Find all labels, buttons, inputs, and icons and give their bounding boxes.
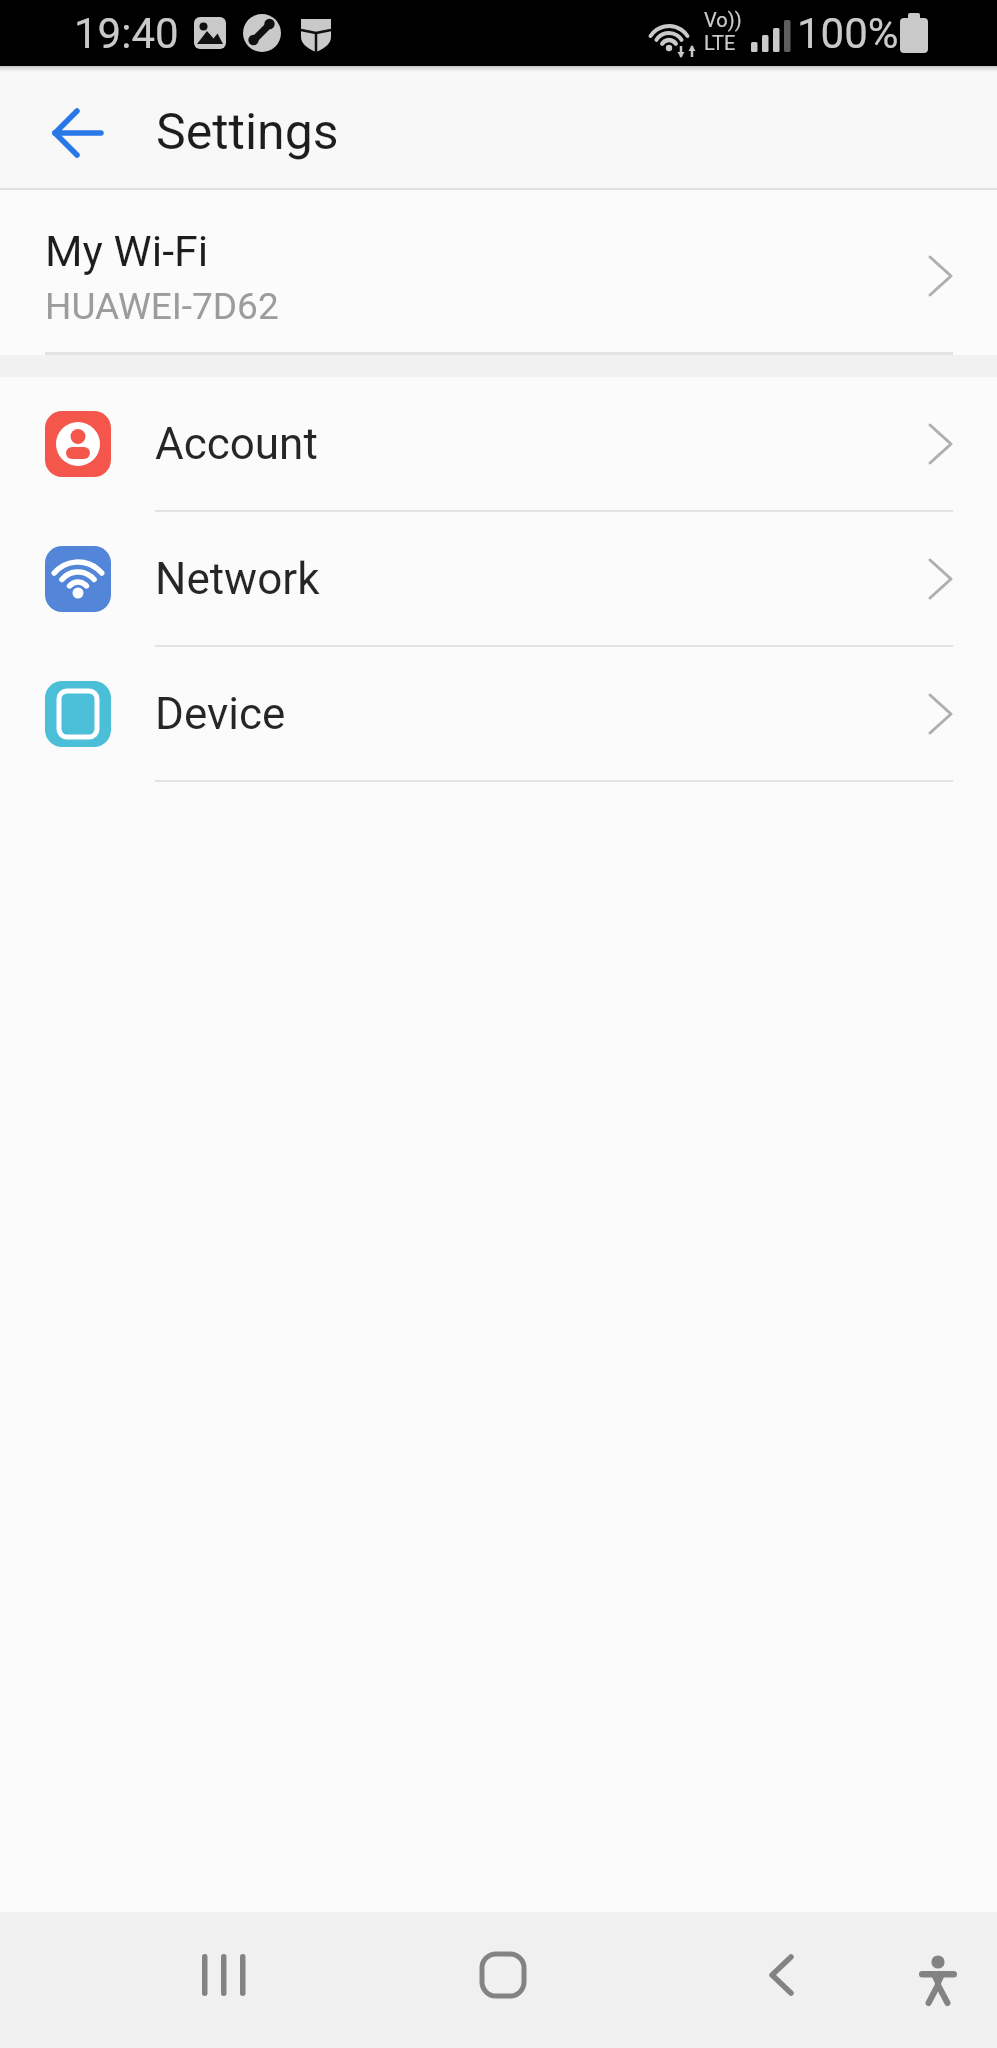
staticText: Device — [155, 688, 286, 740]
button[interactable] — [743, 1937, 819, 2013]
staticText: LTE — [704, 31, 736, 54]
button[interactable]: Device — [0, 647, 997, 780]
staticText: Network — [155, 553, 320, 605]
staticText: Vo)) — [704, 8, 742, 31]
button[interactable] — [38, 93, 118, 173]
button[interactable]: My Wi-Fi — [0, 190, 997, 352]
button[interactable]: Network — [0, 512, 997, 645]
staticText: Account — [155, 418, 318, 470]
staticText: 100% — [797, 9, 899, 58]
button[interactable] — [186, 1937, 262, 2013]
staticText: HUAWEI-7D62 — [45, 285, 279, 328]
staticText: My Wi-Fi — [45, 226, 209, 276]
staticText: 19:40 — [74, 9, 179, 58]
button[interactable]: Account — [0, 377, 997, 510]
staticText: Settings — [156, 103, 339, 162]
button[interactable] — [465, 1937, 541, 2013]
button[interactable] — [900, 1937, 976, 2013]
